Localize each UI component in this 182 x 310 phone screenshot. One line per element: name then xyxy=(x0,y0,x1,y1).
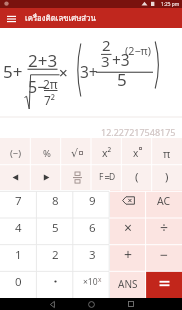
button[interactable]: 2 xyxy=(37,244,74,271)
staticText: × xyxy=(124,218,133,237)
staticText: √ xyxy=(71,147,79,160)
button[interactable]: ×10 xyxy=(74,271,110,298)
staticText: 3 xyxy=(101,51,110,71)
button[interactable]: AC xyxy=(146,190,182,217)
button[interactable]: 0 xyxy=(0,271,37,298)
staticText: % xyxy=(43,147,51,160)
button[interactable]: √ xyxy=(62,138,92,164)
button[interactable] xyxy=(0,164,31,190)
staticText: 6 xyxy=(89,220,96,236)
staticText: 2+3 xyxy=(28,49,58,72)
staticText: 3+ xyxy=(80,61,98,82)
staticText: x xyxy=(133,146,139,160)
staticText: 8 xyxy=(52,193,59,209)
staticText: 3 xyxy=(89,247,96,263)
staticText: (2−π) xyxy=(125,43,151,58)
button[interactable]: F xyxy=(92,164,122,190)
staticText: 5+ xyxy=(3,60,23,83)
button[interactable]: 8 xyxy=(37,190,74,217)
button[interactable]: 7 xyxy=(0,190,37,217)
staticText: x² xyxy=(102,146,112,160)
staticText: ×10 xyxy=(83,276,98,288)
staticText: 7 xyxy=(15,193,22,209)
button[interactable]: 6 xyxy=(74,217,110,244)
staticText: 1:25 pm xyxy=(161,1,180,8)
button[interactable]: ) xyxy=(152,164,182,190)
staticText: 5 xyxy=(117,68,127,91)
staticText: π xyxy=(163,146,171,161)
button[interactable]: x² xyxy=(92,138,122,164)
button[interactable]: ÷ xyxy=(146,217,182,244)
button[interactable]: 1 xyxy=(0,244,37,271)
staticText: D xyxy=(109,171,116,183)
button[interactable] xyxy=(37,271,74,298)
button[interactable] xyxy=(62,164,92,190)
button[interactable] xyxy=(0,8,22,28)
button[interactable] xyxy=(85,298,98,310)
staticText: 0 xyxy=(15,274,22,290)
button[interactable]: ( xyxy=(122,164,152,190)
button[interactable]: ANS xyxy=(110,271,146,298)
staticText: 12.227217548175 xyxy=(101,126,176,138)
staticText: 2 xyxy=(52,247,59,263)
button[interactable] xyxy=(146,271,182,298)
staticText: x xyxy=(98,275,102,284)
button[interactable]: % xyxy=(31,138,62,164)
staticText: F xyxy=(99,171,104,183)
staticText: 5 xyxy=(52,220,59,236)
button[interactable]: + xyxy=(110,244,146,271)
button[interactable]: x xyxy=(122,138,152,164)
staticText: 7² xyxy=(44,92,56,108)
button[interactable] xyxy=(31,164,62,190)
staticText: 9 xyxy=(89,193,96,209)
button[interactable]: × xyxy=(110,217,146,244)
button[interactable] xyxy=(46,298,59,310)
staticText: 4 xyxy=(15,220,22,236)
staticText: 5− xyxy=(28,76,47,98)
button[interactable] xyxy=(110,190,146,217)
staticText: ( xyxy=(135,169,139,185)
staticText: ) xyxy=(165,169,169,185)
staticText: + xyxy=(124,245,133,264)
button[interactable]: 5 xyxy=(37,217,74,244)
button[interactable]: 9 xyxy=(74,190,110,217)
staticText: 1 xyxy=(15,247,22,263)
staticText: +3 xyxy=(112,49,130,70)
staticText: ANS xyxy=(118,277,138,291)
button[interactable]: 4 xyxy=(0,217,37,244)
staticText: 2π xyxy=(43,76,58,92)
button[interactable]: − xyxy=(146,244,182,271)
staticText: 2 xyxy=(102,35,111,55)
button[interactable]: 3 xyxy=(74,244,110,271)
button[interactable]: π xyxy=(152,138,182,164)
button[interactable] xyxy=(124,298,137,310)
staticText: ÷ xyxy=(160,218,169,237)
staticText: AC xyxy=(157,194,171,208)
staticText: เครื่องคิดเลขเศษส่วน xyxy=(25,12,96,24)
staticText: (−) xyxy=(10,147,22,160)
button[interactable]: (−) xyxy=(0,138,31,164)
staticText: − xyxy=(160,245,169,264)
